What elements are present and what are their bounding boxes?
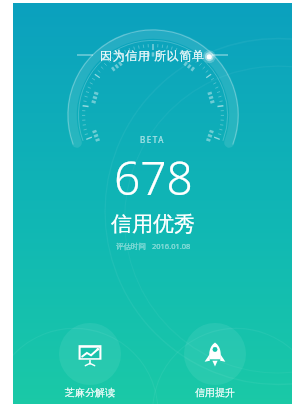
staticText: BETA [140, 134, 166, 145]
button[interactable]: 芝麻分解读 [42, 323, 138, 402]
staticText: 因为信用 所以简单 [100, 47, 205, 63]
button[interactable]: 信用提升 [167, 323, 263, 402]
staticText: 芝麻分解读 [65, 386, 115, 399]
staticText: 2016.01.08 [152, 241, 191, 251]
staticText: 信用提升 [195, 386, 235, 399]
staticText: 678 [114, 146, 193, 209]
staticText: 信用优秀 [111, 211, 195, 237]
other: 信用提升 [202, 341, 228, 367]
staticText: 评估时间 [116, 242, 146, 251]
other: 芝麻分解读 [77, 341, 103, 367]
